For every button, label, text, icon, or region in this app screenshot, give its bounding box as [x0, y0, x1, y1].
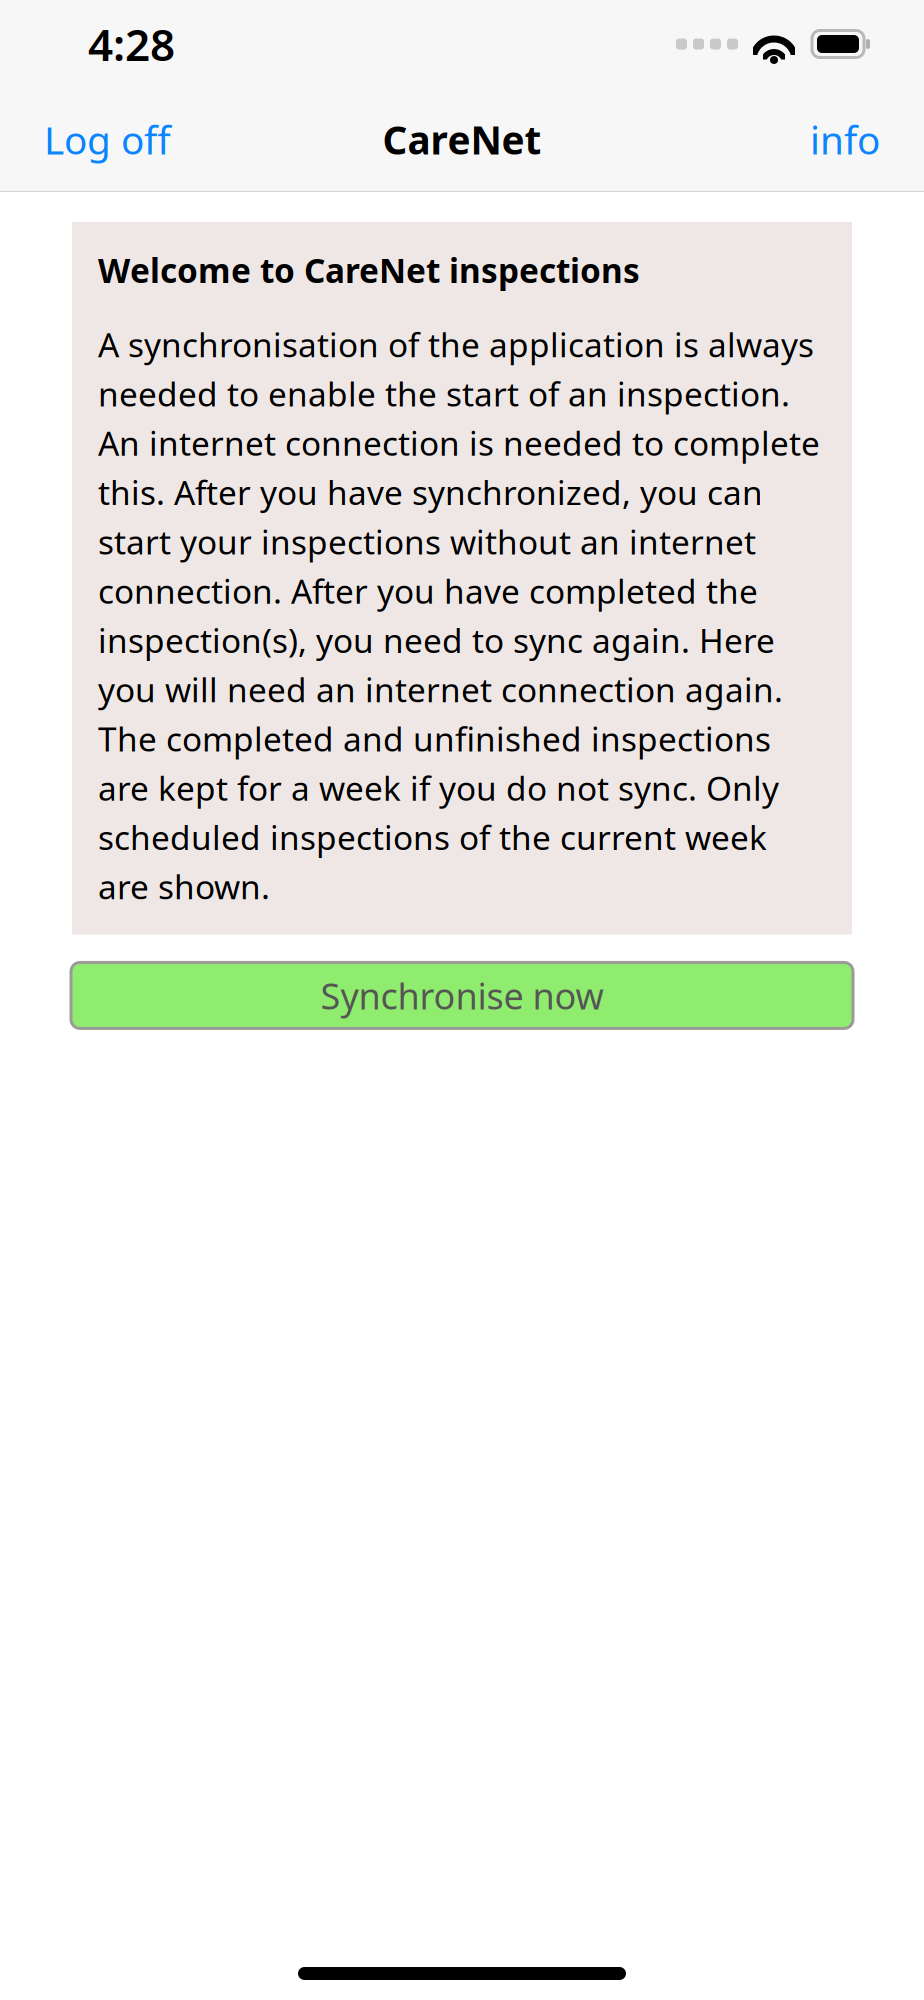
staticText: CareNet: [382, 114, 541, 165]
staticText: info: [810, 114, 880, 165]
staticText: A synchronisation of the application is …: [98, 322, 820, 908]
staticText: 4:28: [88, 15, 175, 73]
staticText: Synchronise now: [320, 971, 603, 1019]
button[interactable]: info: [800, 104, 890, 175]
button[interactable]: Synchronise now: [71, 962, 853, 1028]
staticText: Log off: [44, 114, 171, 165]
button[interactable]: Log off: [34, 104, 181, 175]
staticText: Welcome to CareNet inspections: [98, 248, 640, 292]
